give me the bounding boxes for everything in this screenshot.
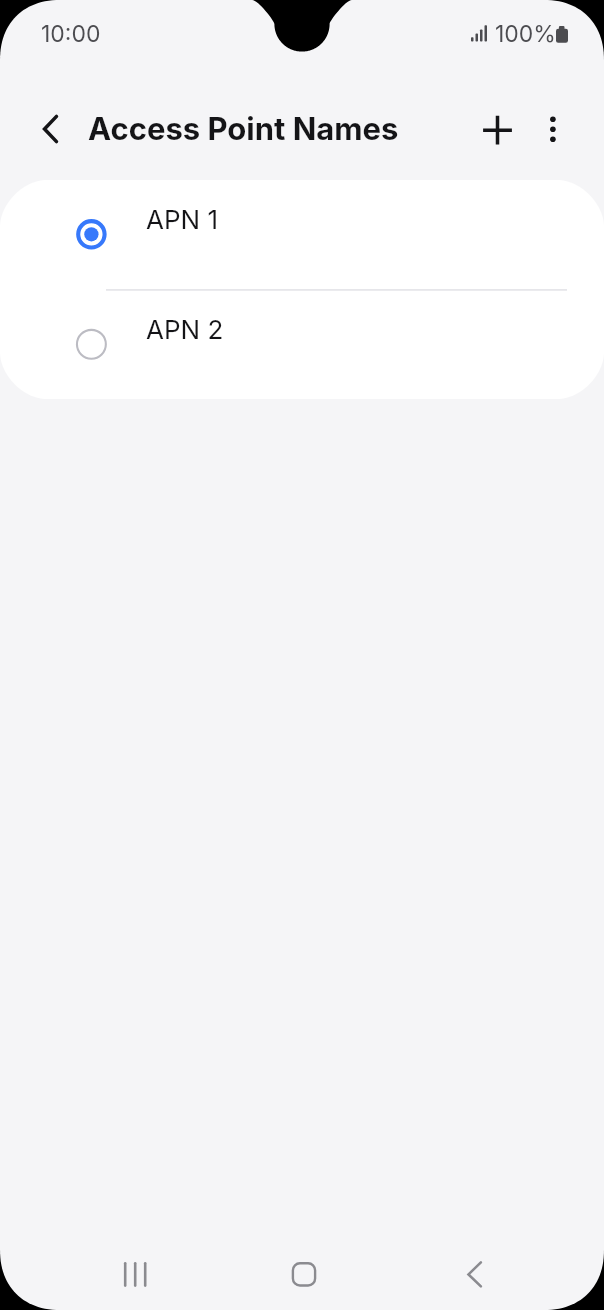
button[interactable]: Navigate up [21,101,77,157]
button[interactable]: APN 1 [0,180,604,290]
button[interactable]: Add APN [464,97,529,162]
button[interactable]: Home [264,1244,344,1304]
staticText: APN 2 [146,314,224,345]
button[interactable]: APN 2 [0,290,604,399]
button[interactable]: Back [436,1244,516,1304]
staticText: APN 1 [146,204,219,235]
button[interactable]: More options [521,97,585,161]
button[interactable]: Recent apps [95,1244,175,1304]
staticText: 10:00 [41,20,101,48]
staticText: 100% [495,20,556,48]
staticText: Access Point Names [88,110,399,148]
